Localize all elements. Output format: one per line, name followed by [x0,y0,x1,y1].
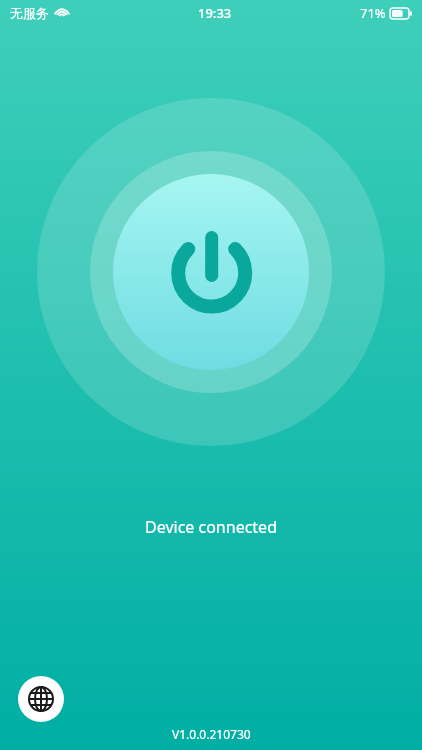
staticText: 19:33 [198,4,232,22]
staticText: V1.0.0.210730 [172,726,251,742]
button[interactable]: Language [18,676,64,722]
staticText: 无服务 [10,5,49,21]
staticText: Device connected [145,516,277,538]
staticText: 71% [360,4,386,22]
